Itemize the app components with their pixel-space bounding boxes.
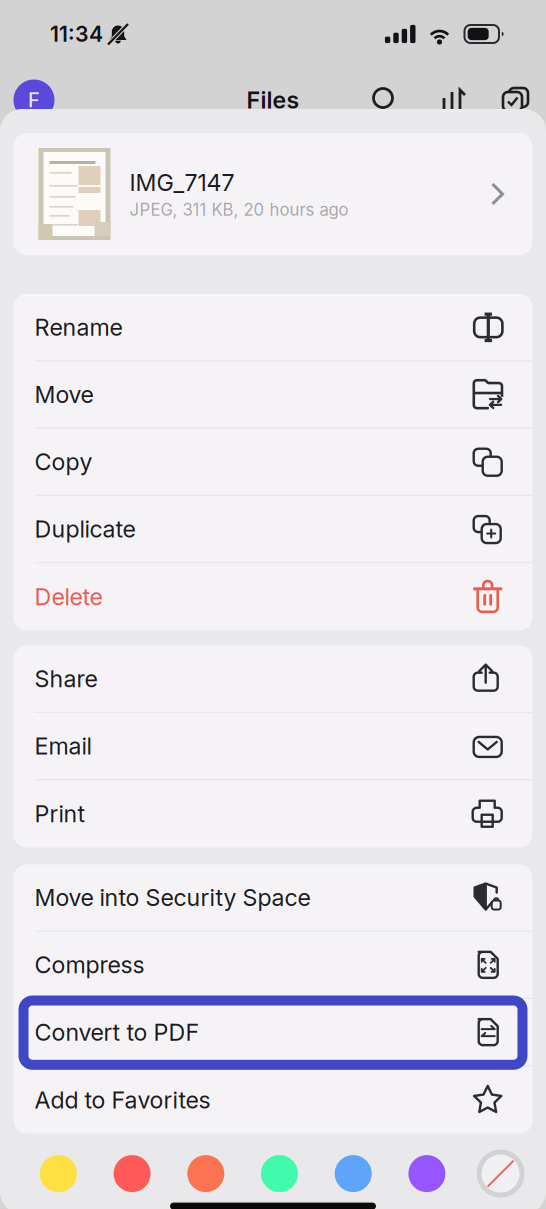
button[interactable]: Print xyxy=(13,780,532,847)
staticText: Email xyxy=(34,732,91,760)
button[interactable]: Search xyxy=(365,77,403,123)
staticText: 11:34 xyxy=(50,21,103,47)
button[interactable]: Convert to PDF xyxy=(13,999,532,1066)
staticText: Copy xyxy=(34,448,92,476)
button[interactable]: Email xyxy=(13,713,532,780)
staticText: IMG_7147 xyxy=(129,168,234,196)
staticText: Add to Favorites xyxy=(34,1086,210,1114)
button[interactable]: Account xyxy=(11,77,57,123)
button[interactable]: Tag colour xyxy=(169,1142,243,1206)
button[interactable]: IMG_7147 xyxy=(13,133,532,255)
button[interactable]: Move into Security Space xyxy=(13,864,532,932)
button[interactable]: Duplicate xyxy=(13,496,532,563)
button[interactable]: Compress xyxy=(13,932,532,999)
button[interactable]: Rename xyxy=(13,294,532,361)
staticText: Print xyxy=(34,800,85,828)
button[interactable]: Tag colour xyxy=(22,1142,95,1206)
button[interactable]: Tag colour xyxy=(95,1142,169,1206)
button[interactable]: No colour xyxy=(464,1142,537,1206)
button[interactable]: Add to Favorites xyxy=(13,1066,532,1134)
staticText: Rename xyxy=(34,313,122,341)
button[interactable]: Tag colour xyxy=(243,1142,316,1206)
button[interactable]: Select xyxy=(497,77,535,123)
button[interactable]: Tag colour xyxy=(316,1142,390,1206)
staticText: Compress xyxy=(34,951,144,979)
staticText: Files xyxy=(246,86,299,114)
staticText: Share xyxy=(34,664,97,693)
button[interactable]: Copy xyxy=(13,429,532,496)
staticText: JPEG, 311 KB, 20 hours ago xyxy=(129,199,348,220)
staticText: Delete xyxy=(34,583,102,611)
staticText: Move into Security Space xyxy=(34,883,310,912)
staticText: F xyxy=(28,88,40,112)
button[interactable]: Delete xyxy=(13,563,532,630)
staticText: Move xyxy=(34,380,93,408)
button[interactable]: Tag colour xyxy=(390,1142,464,1206)
staticText: Duplicate xyxy=(34,515,135,543)
button[interactable]: Sort xyxy=(434,77,472,123)
staticText: Convert to PDF xyxy=(34,1018,199,1046)
button[interactable]: Share xyxy=(13,645,532,713)
button[interactable]: Move xyxy=(13,361,532,429)
